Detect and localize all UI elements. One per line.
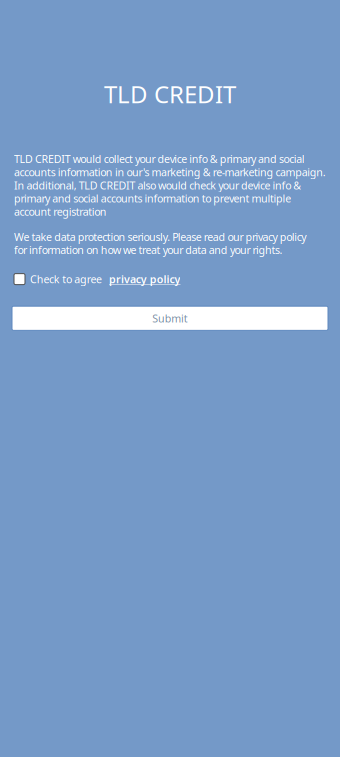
staticText: TLD CREDIT would collect your device inf… [14, 152, 326, 219]
staticText: Check to agree [30, 272, 102, 286]
button[interactable]: Submit [14, 306, 326, 330]
button[interactable]: privacy policy [102, 272, 180, 286]
button[interactable]: Agree to privacy policy [14, 274, 25, 285]
staticText: Submit [152, 311, 188, 325]
staticText: TLD CREDIT [104, 78, 236, 110]
staticText: privacy policy [109, 272, 180, 286]
staticText: We take data protection seriously. Pleas… [14, 230, 306, 257]
